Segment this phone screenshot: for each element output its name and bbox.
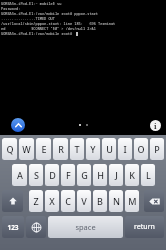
staticText: F: [66, 169, 71, 181]
staticText: G: [81, 169, 88, 181]
staticText: R: [58, 143, 64, 155]
button[interactable]: Shift: [2, 190, 23, 212]
button[interactable]: U: [102, 138, 116, 160]
staticText: C: [65, 195, 71, 207]
staticText: A: [17, 169, 23, 181]
button[interactable]: 123: [2, 216, 24, 238]
staticText: space: [75, 222, 96, 232]
button[interactable]: space: [48, 216, 123, 238]
button[interactable]: X: [45, 190, 59, 212]
button[interactable]: G: [77, 164, 91, 186]
staticText: Password:: [1, 6, 21, 11]
staticText: I: [123, 143, 127, 155]
staticText: D: [49, 169, 56, 181]
staticText: T: [74, 143, 80, 155]
staticText: O: [137, 143, 145, 155]
button[interactable]: Scroll up: [11, 118, 25, 132]
staticText: E: [41, 143, 47, 155]
staticText: Q: [6, 143, 14, 155]
button[interactable]: Info: [150, 120, 161, 131]
button[interactable]: S: [29, 164, 43, 186]
button[interactable]: L: [141, 164, 155, 186]
staticText: i: [154, 121, 157, 131]
staticText: H: [97, 169, 104, 181]
button[interactable]: W: [19, 138, 34, 160]
button[interactable]: D: [45, 164, 59, 186]
button[interactable]: Q: [2, 138, 17, 160]
button[interactable]: I: [118, 138, 132, 160]
staticText: ................TIMED OUT: [1, 16, 55, 21]
button[interactable]: K: [125, 164, 139, 186]
button[interactable]: return: [125, 216, 164, 238]
button[interactable]: R: [53, 138, 68, 160]
button[interactable]: J: [109, 164, 123, 186]
staticText: Y: [90, 143, 96, 155]
staticText: V: [81, 195, 87, 207]
button[interactable]: O: [134, 138, 148, 160]
button[interactable]: B: [93, 190, 107, 212]
button[interactable]: H: [93, 164, 107, 186]
button[interactable]: T: [70, 138, 84, 160]
staticText: M: [128, 195, 137, 207]
staticText: 123: [7, 223, 19, 232]
staticText: L: [146, 169, 151, 181]
staticText: N: [113, 195, 120, 207]
staticText: P: [154, 143, 160, 155]
staticText: B: [97, 195, 103, 207]
button[interactable]: Z: [29, 190, 43, 212]
button[interactable]: E: [36, 138, 51, 160]
staticText: J: [115, 169, 118, 181]
staticText: X: [49, 195, 55, 207]
staticText: GORBASn-iPod-E1:/var/mobile root# pppoe-…: [1, 11, 99, 16]
button[interactable]: Y: [86, 138, 100, 160]
button[interactable]: V: [77, 190, 91, 212]
button[interactable]: P: [150, 138, 164, 160]
staticText: GORBASn-iPod-E1:/var/mobile root#: [1, 31, 75, 36]
button[interactable]: A: [12, 164, 27, 186]
staticText: K: [129, 169, 135, 181]
staticText: /usr/local/sbin/pppoe-start: line 185: 6…: [1, 21, 116, 26]
staticText: return: [134, 222, 155, 232]
staticText: U: [106, 143, 113, 155]
button[interactable]: C: [61, 190, 75, 212]
button[interactable]: Change keyboard language: [26, 216, 46, 238]
staticText: S: [34, 169, 39, 181]
staticText: Z: [33, 195, 39, 207]
button[interactable]: M: [125, 190, 139, 212]
staticText: ed $CONNECT "$0" > /dev/null 2>&1: [1, 26, 96, 31]
button[interactable]: F: [61, 164, 75, 186]
staticText: GORBASn-iPod-E1:~ mobile$ su: [1, 1, 62, 6]
button[interactable]: N: [109, 190, 123, 212]
button[interactable]: Delete: [144, 190, 164, 212]
staticText: W: [22, 143, 31, 155]
